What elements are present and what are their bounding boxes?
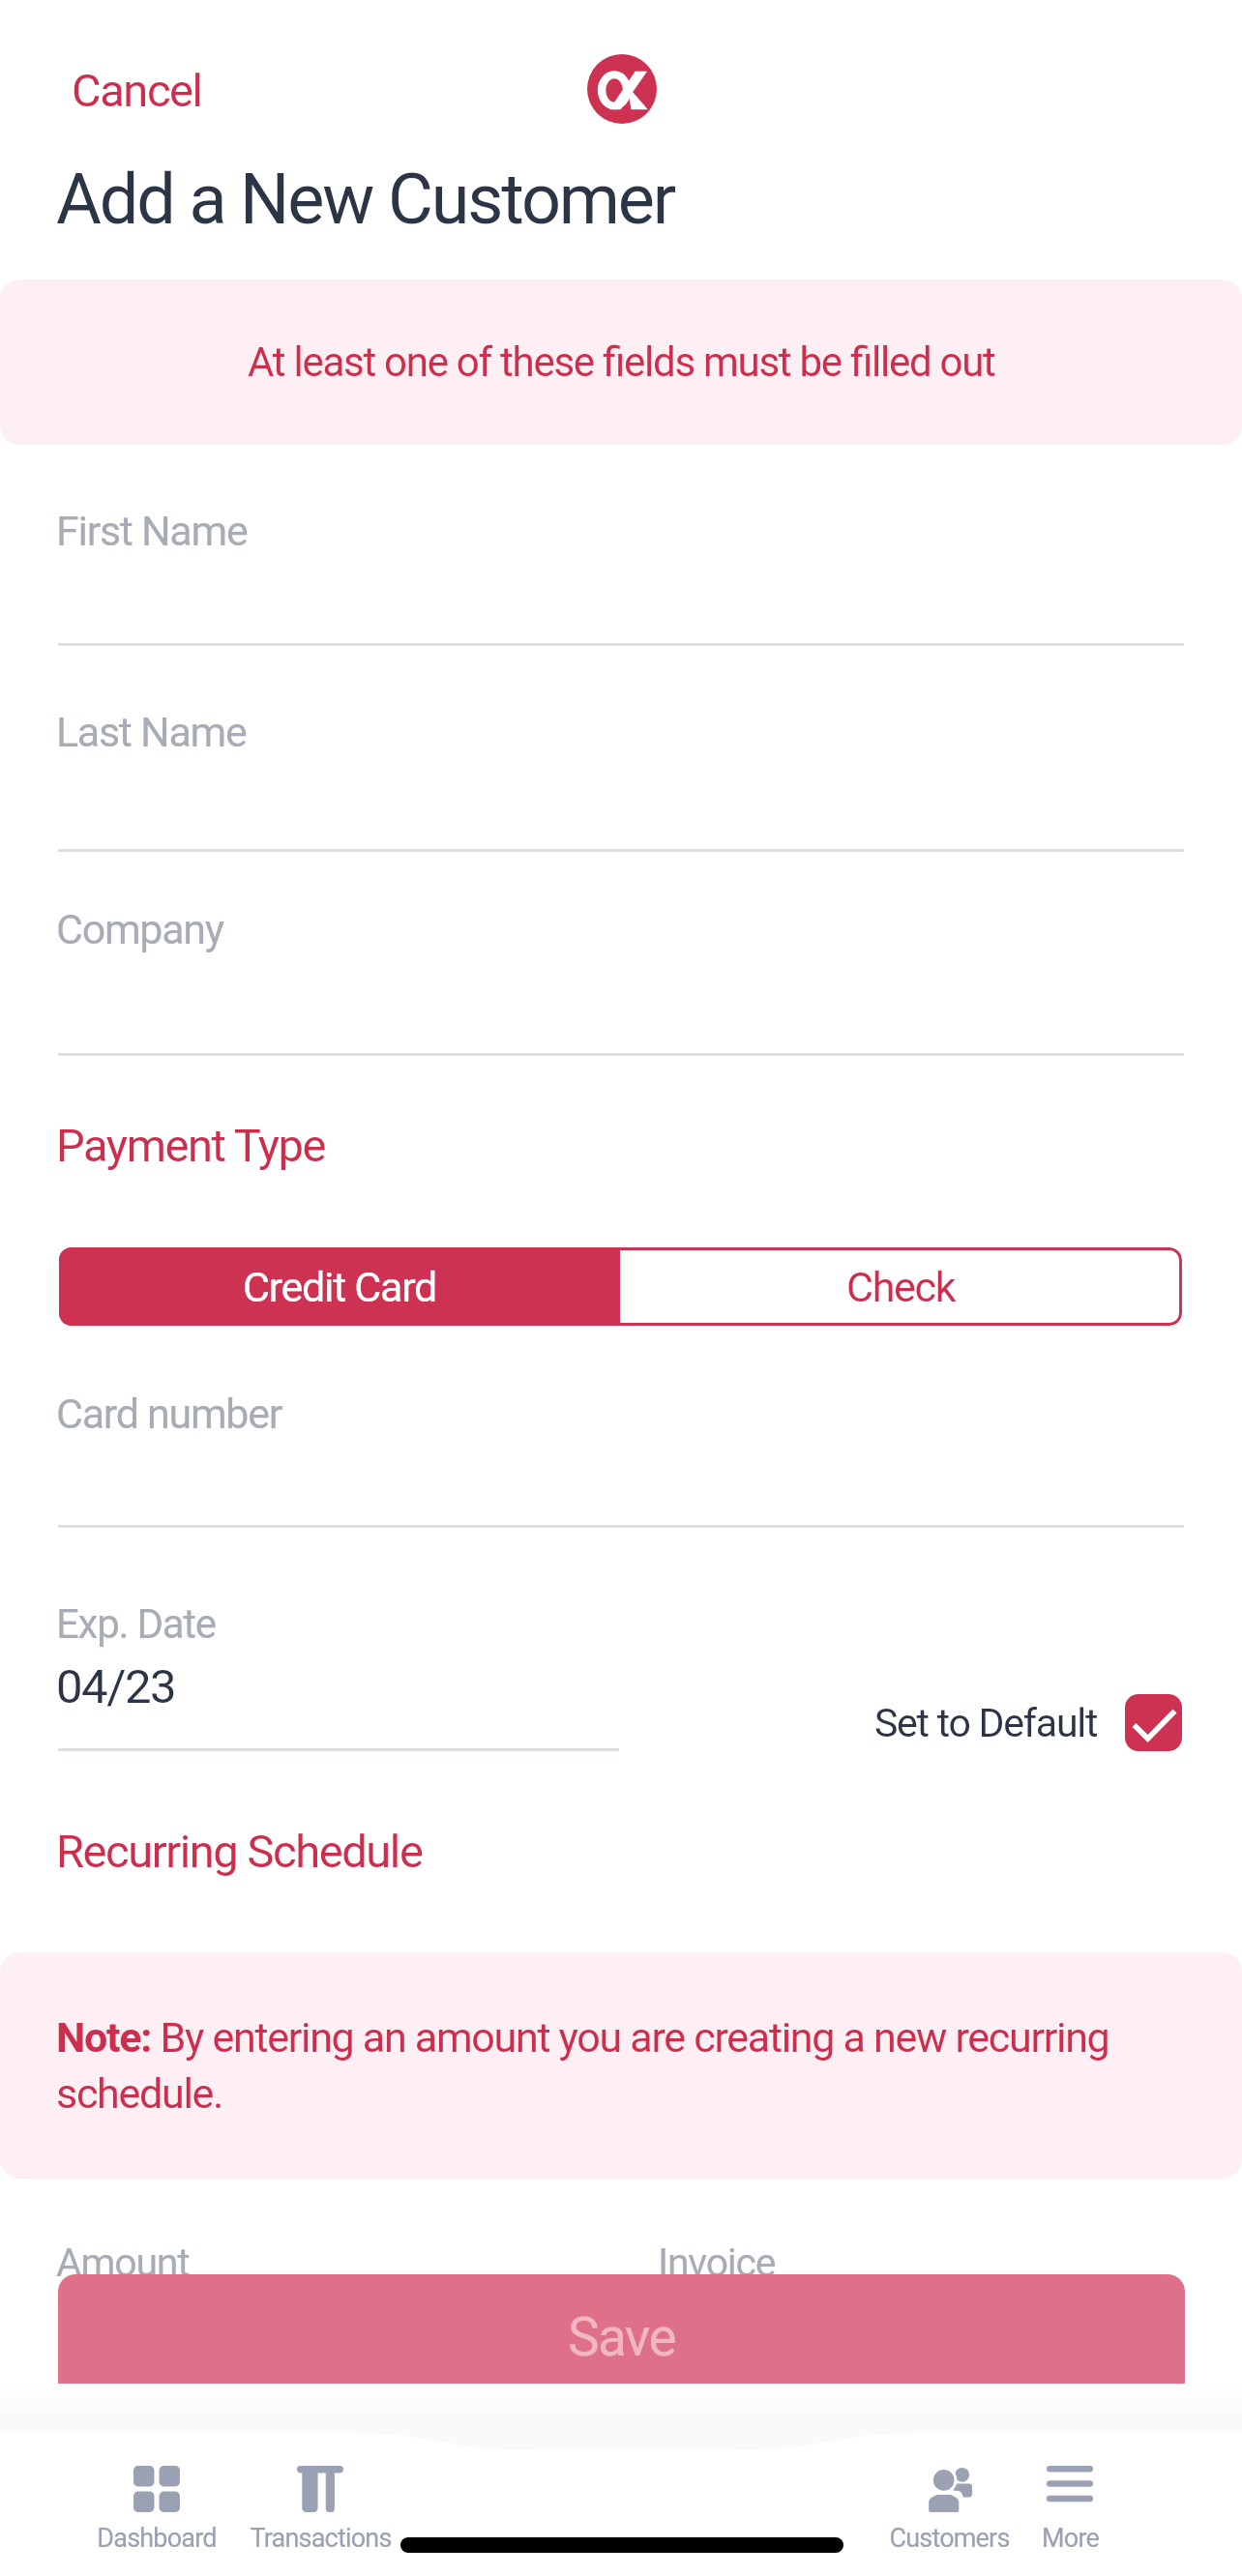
button[interactable] xyxy=(58,643,1184,646)
staticText: 04/23 xyxy=(56,1659,176,1714)
staticText: Exp. Date xyxy=(56,1600,216,1648)
button[interactable] xyxy=(58,1053,1184,1056)
staticText: Last Name xyxy=(56,708,247,756)
staticText: Transactions xyxy=(250,2523,392,2554)
staticText: At least one of these fields must be fil… xyxy=(248,338,995,386)
button[interactable]: Dashboard xyxy=(70,2466,244,2554)
staticText: Dashboard xyxy=(97,2523,217,2554)
staticText: Customers xyxy=(889,2523,1010,2554)
button[interactable]: Transactions xyxy=(233,2466,407,2554)
other: App logo xyxy=(587,54,657,124)
staticText: Card number xyxy=(56,1390,281,1438)
button[interactable]: Cancel xyxy=(33,43,241,138)
staticText: First Name xyxy=(56,507,248,555)
staticText: Invoice xyxy=(658,2239,776,2286)
staticText: Credit Card xyxy=(243,1263,437,1311)
staticText: Company xyxy=(56,905,223,953)
staticText: Save xyxy=(568,2306,676,2368)
staticText: Payment Type xyxy=(56,1119,326,1172)
staticText: Amount xyxy=(56,2239,190,2286)
staticText: Note: By entering an amount you are crea… xyxy=(56,2013,1144,2118)
staticText: More xyxy=(1042,2523,1099,2554)
button[interactable]: Credit Card xyxy=(59,1247,620,1326)
button[interactable]: Set to Default xyxy=(859,1684,1198,1761)
button[interactable]: Save xyxy=(58,2274,1185,2399)
staticText: Check xyxy=(846,1263,956,1311)
staticText: Set to Default xyxy=(874,1700,1098,1746)
button[interactable]: Check xyxy=(620,1247,1182,1326)
button[interactable]: More xyxy=(983,2466,1157,2554)
staticText: Recurring Schedule xyxy=(56,1825,423,1878)
staticText: Cancel xyxy=(72,64,202,117)
button[interactable]: Customers xyxy=(862,2466,1036,2554)
staticText: Add a New Customer xyxy=(56,159,675,240)
